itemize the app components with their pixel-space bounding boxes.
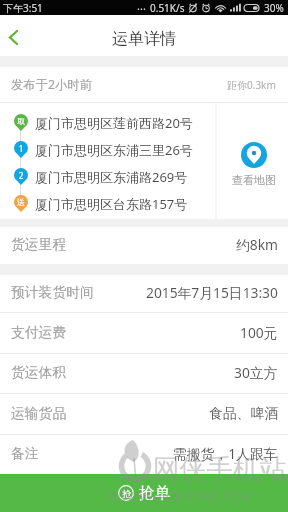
staticText: 2 <box>14 170 28 181</box>
staticText: WWW.HACKHOME.COM <box>109 487 254 505</box>
staticText: 送 <box>14 197 28 207</box>
staticText: 1 <box>14 143 28 154</box>
staticText: 需搬货，1人跟车 <box>173 444 278 463</box>
staticText: 距你0.3km <box>227 78 276 92</box>
staticText: 30立方 <box>234 363 278 382</box>
staticText: 抢单 <box>139 483 170 503</box>
staticText: 30% <box>264 1 284 15</box>
staticText: 网侠手机站 <box>153 452 286 486</box>
staticText: ... <box>137 0 146 13</box>
staticText: 查看地图 <box>232 173 276 187</box>
staticText: 厦门市思明区莲前西路20号 <box>35 114 193 132</box>
staticText: 预计装货时间 <box>11 284 94 301</box>
staticText: 货运里程 <box>11 236 67 253</box>
staticText: 0.51K/s <box>150 1 185 15</box>
staticText: 厦门市思明区台东路157号 <box>35 195 188 213</box>
staticText: 2015年7月15日13:30 <box>146 283 278 302</box>
staticText: 食品、啤酒 <box>209 405 278 422</box>
staticText: 货运体积 <box>11 364 67 381</box>
button[interactable]: 查看地图 <box>220 136 288 187</box>
staticText: 100元 <box>240 323 278 342</box>
staticText: 下午3:51 <box>3 1 43 15</box>
button[interactable]: Back <box>0 20 31 51</box>
staticText: 运单详情 <box>112 29 176 49</box>
staticText: 运输货品 <box>11 405 67 422</box>
button[interactable]: 抢 <box>0 474 288 512</box>
staticText: 厦门市思明区东浦三里26号 <box>35 141 193 159</box>
staticText: 备注 <box>11 445 39 462</box>
staticText: 支付运费 <box>11 324 67 341</box>
staticText: 约8km <box>236 235 278 254</box>
staticText: 抢 <box>122 488 131 499</box>
staticText: 取 <box>14 116 28 126</box>
staticText: 厦门市思明区东浦路269号 <box>35 168 188 186</box>
staticText: 发布于2小时前 <box>11 76 92 93</box>
